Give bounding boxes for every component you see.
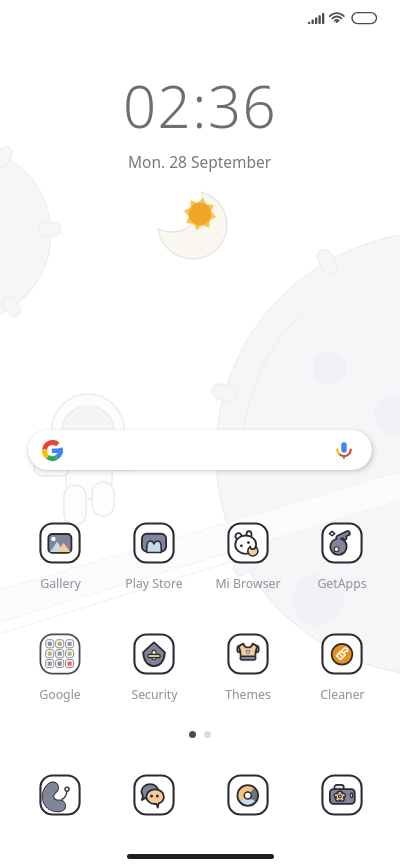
- staticText: Gallery: [40, 575, 81, 592]
- button[interactable]: Google search: [28, 430, 372, 470]
- button[interactable]: Mi Browser: [201, 521, 295, 592]
- staticText: 02:36: [123, 66, 278, 145]
- staticText: Google: [39, 686, 81, 703]
- staticText: Mi Browser: [215, 575, 281, 592]
- staticText: Themes: [225, 686, 271, 703]
- button[interactable]: Contacts: [201, 772, 295, 818]
- staticText: Security: [131, 686, 178, 703]
- staticText: Play Store: [125, 575, 183, 592]
- button[interactable]: Camera: [295, 772, 389, 818]
- button[interactable]: GetApps: [295, 521, 389, 592]
- button[interactable]: Themes: [201, 632, 295, 703]
- staticText: GetApps: [317, 575, 367, 592]
- button[interactable]: Security: [107, 632, 201, 703]
- staticText: Cleaner: [320, 686, 365, 703]
- button[interactable]: Play Store: [107, 521, 201, 592]
- button[interactable]: Gallery: [13, 521, 107, 592]
- staticText: Mon. 28 September: [128, 151, 272, 172]
- button[interactable]: Messages: [107, 772, 201, 818]
- button[interactable]: Phone: [13, 772, 107, 818]
- button[interactable]: Google: [13, 632, 107, 703]
- button[interactable]: Cleaner: [295, 632, 389, 703]
